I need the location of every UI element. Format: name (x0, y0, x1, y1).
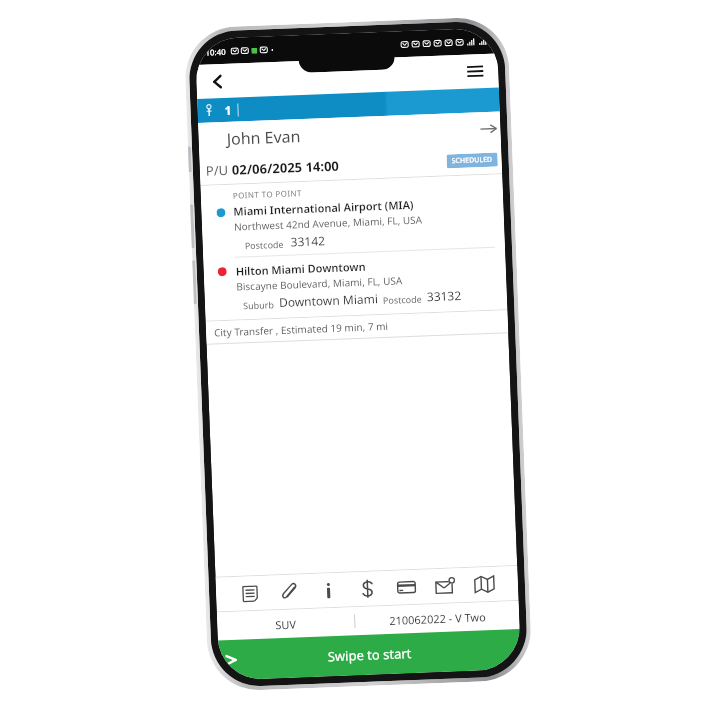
staticText: SUV (275, 617, 297, 632)
button[interactable]: John Evan (198, 111, 501, 157)
button[interactable]: SCHEDULED (451, 155, 493, 166)
staticText: Hilton Miami Downtown (235, 259, 366, 279)
staticText: Swipe to start (327, 644, 412, 665)
button[interactable]: Payment (386, 570, 427, 605)
button[interactable]: 210062022 - V Two (355, 601, 520, 635)
button[interactable]: Map (464, 567, 505, 602)
staticText: SCHEDULED (451, 155, 493, 166)
staticText: 02/06/2025 14:00 (231, 157, 340, 179)
staticText: 210062022 - V Two (389, 609, 486, 628)
staticText: John Evan (226, 125, 301, 150)
staticText: City Transfer , Estimated 19 min, 7 mi (214, 319, 389, 339)
staticText: Suburb (243, 298, 274, 311)
button[interactable]: Notes (229, 576, 271, 611)
staticText: Northwest 42nd Avenue, Miami, FL, USA (234, 212, 423, 234)
staticText: 33142 (290, 232, 326, 249)
button[interactable]: Back (202, 66, 233, 97)
staticText: P/U (205, 161, 232, 180)
button[interactable]: Price (347, 571, 388, 607)
button[interactable]: Info (308, 573, 349, 608)
staticText: Downtown Miami (279, 290, 378, 310)
staticText: 33132 (426, 287, 462, 304)
button[interactable]: Messages (425, 568, 466, 604)
staticText: POINT TO POINT (233, 187, 302, 201)
button[interactable]: Miami International Airport (MIA) (201, 193, 505, 253)
staticText: Miami International Airport (MIA) (233, 197, 414, 219)
staticText: Biscayne Boulevard, Miami, FL, USA (236, 273, 402, 294)
button[interactable]: SUV (217, 607, 355, 641)
button[interactable]: Swipe to start (218, 629, 521, 681)
button[interactable]: Hilton Miami Downtown (203, 253, 507, 313)
staticText: 1 (224, 102, 232, 118)
button[interactable]: Menu (460, 56, 491, 87)
staticText: Postcode (244, 238, 284, 251)
button[interactable]: Attachments (269, 574, 310, 610)
staticText: Postcode (383, 292, 422, 306)
staticText: 10:40 (205, 46, 226, 58)
